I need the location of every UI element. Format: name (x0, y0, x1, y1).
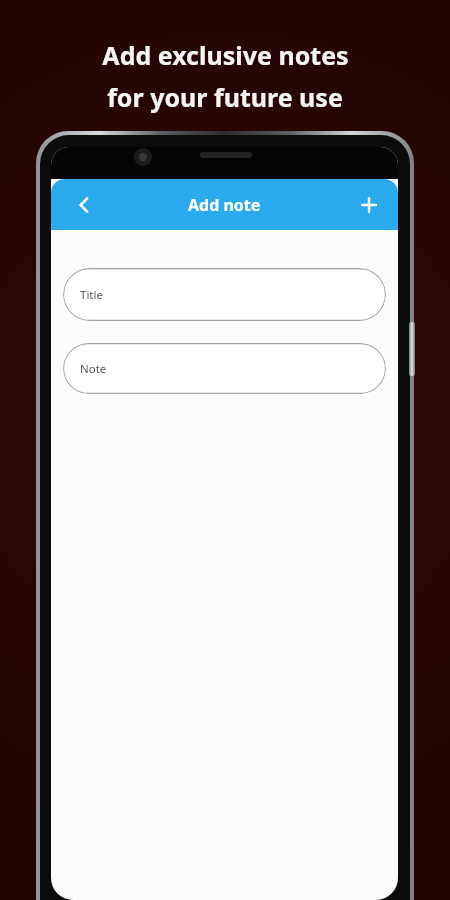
button[interactable]: Note (63, 343, 386, 394)
button[interactable]: Back (63, 184, 105, 226)
staticText: for your future use (107, 80, 343, 114)
button[interactable]: Title (63, 268, 386, 321)
staticText: Add exclusive notes (102, 38, 349, 72)
other: Power button (409, 322, 415, 376)
staticText: Add note (188, 194, 261, 216)
staticText: Title (80, 287, 103, 303)
button[interactable]: Add (348, 184, 390, 226)
staticText: Note (80, 361, 107, 377)
